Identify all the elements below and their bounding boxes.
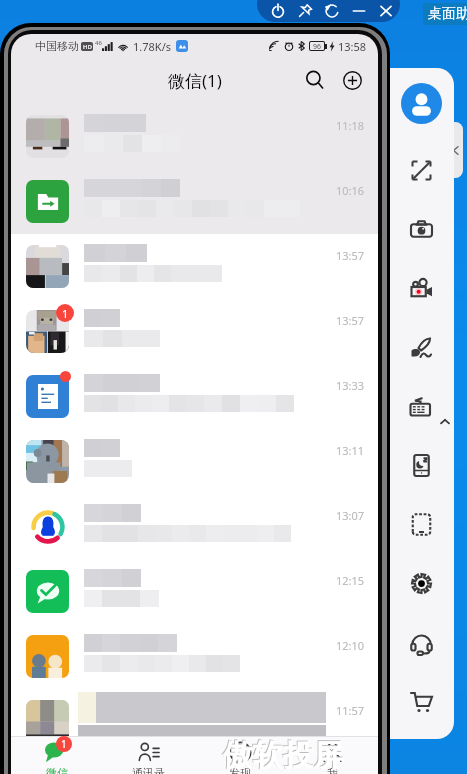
button[interactable]: 桌面助 [423,3,467,25]
staticText: 46 [95,39,102,47]
staticText: 我 [327,766,338,774]
button[interactable]: Collapse panel [448,122,463,178]
staticText: 13:33 [336,378,365,393]
staticText: HD [83,43,92,51]
button[interactable]: Settings [399,561,443,605]
staticText: 11:57 [336,703,365,718]
button[interactable]: Rotate [323,2,341,20]
button[interactable]: Draw [399,325,443,369]
button[interactable]: 13:11 [11,429,378,494]
button[interactable]: 我 [286,736,378,774]
button[interactable]: 12:15 [11,559,378,624]
staticText: 桌面助 [428,5,467,23]
staticText: 12:10 [336,638,365,653]
staticText: 13:11 [336,443,365,458]
staticText: 傲软投屏 [223,737,343,774]
staticText: 微信(1) [168,69,222,92]
staticText: 发现 [229,766,251,774]
button[interactable]: 12:10 [11,624,378,689]
staticText: 1 [62,306,69,321]
staticText: 96 [313,42,322,50]
button[interactable]: Search [299,64,331,96]
staticText: 11:18 [336,118,365,133]
button[interactable]: Minimize [350,2,368,20]
button[interactable]: Pin [296,2,314,20]
button[interactable]: Close [377,2,395,20]
staticText: 傲软投屏 [222,736,342,774]
button[interactable]: Select region [399,502,443,546]
button[interactable]: Record [399,266,443,310]
staticText: 中国移动 [35,39,79,53]
staticText: 1 [61,737,67,751]
button[interactable]: Fullscreen [399,148,443,192]
button[interactable]: Support [399,620,443,664]
button[interactable]: Account [401,83,442,124]
staticText: 13:57 [336,248,365,263]
button[interactable]: 1 [11,299,378,364]
button[interactable]: 13:33 [11,364,378,429]
button[interactable]: Power [269,2,287,20]
button[interactable]: 13:07 [11,494,378,559]
button[interactable]: 11:57 [11,689,378,754]
staticText: 13:58 [338,39,367,54]
staticText: 微信 [46,766,68,774]
button[interactable]: Shop [399,679,443,723]
staticText: 10:16 [336,183,365,198]
button[interactable]: 发现 [194,736,286,774]
button[interactable]: Screenshot [399,207,443,251]
button[interactable]: Keyboard [399,384,443,428]
staticText: 通讯录 [132,766,165,774]
button[interactable]: 13:57 [11,234,378,299]
staticText: 13:07 [336,508,365,523]
button[interactable]: 1 [11,736,102,774]
button[interactable]: 10:16 [11,169,378,234]
button[interactable]: 11:18 [11,104,378,169]
staticText: 12:15 [336,573,365,588]
staticText: 1.78K/s [133,39,171,54]
button[interactable]: 通讯录 [102,736,194,774]
button[interactable]: Power [257,0,400,22]
staticText: 13:57 [336,313,365,328]
button[interactable]: Add [336,64,368,96]
button[interactable]: Sleep [399,443,443,487]
